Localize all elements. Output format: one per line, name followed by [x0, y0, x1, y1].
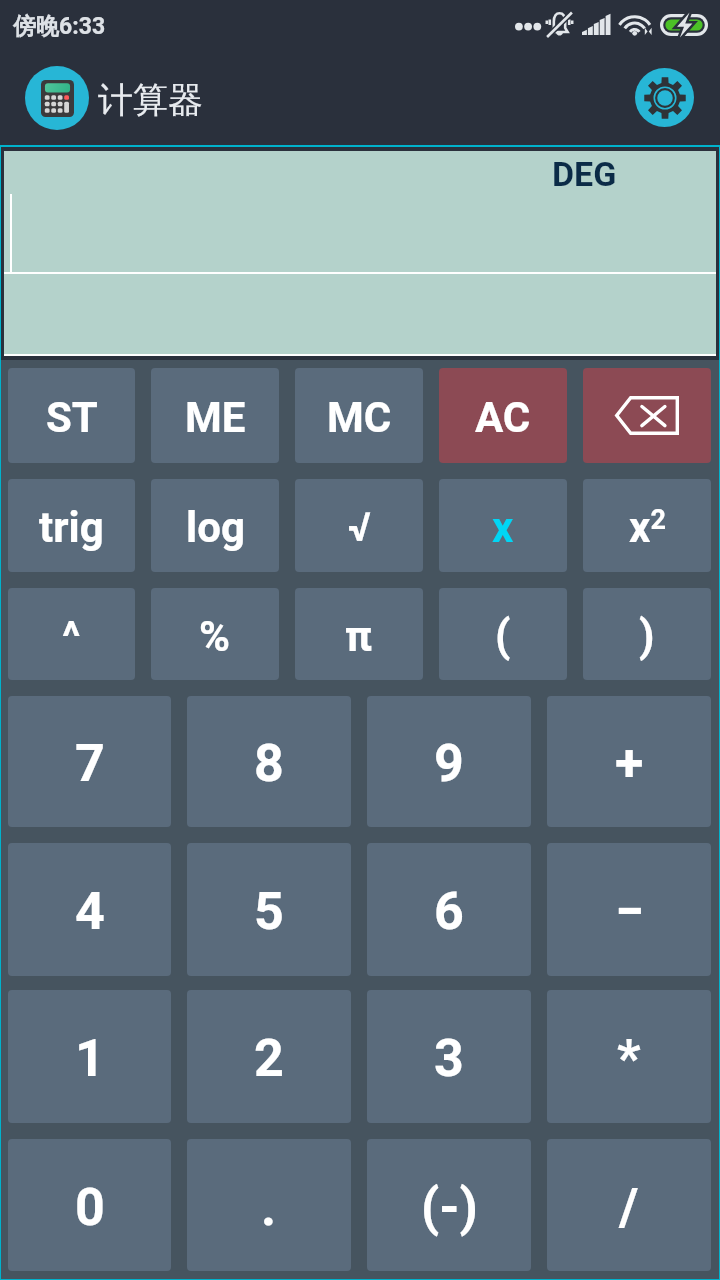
button[interactable]: 9 — [367, 696, 531, 827]
staticText: 6 — [434, 881, 464, 942]
staticText: 傍晚6:33 — [13, 12, 106, 41]
button[interactable]: 6 — [367, 843, 531, 976]
button[interactable]: 8 — [187, 696, 351, 827]
staticText: 0 — [75, 1177, 105, 1238]
staticText: % — [199, 612, 231, 661]
staticText: (-) — [421, 1177, 478, 1238]
button[interactable]: 4 — [8, 843, 171, 976]
button[interactable]: ^ — [8, 588, 135, 680]
staticText: 3 — [434, 1028, 464, 1089]
button[interactable]: Calculator — [25, 66, 89, 130]
staticText: 5 — [254, 881, 284, 942]
button[interactable]: (-) — [367, 1139, 531, 1271]
staticText: DEG — [552, 154, 617, 194]
staticText: ( — [495, 610, 511, 662]
staticText: ) — [639, 610, 655, 662]
staticText: / — [619, 1177, 639, 1238]
staticText: AC — [475, 393, 531, 442]
button[interactable]: ME — [151, 368, 279, 463]
button[interactable]: x2 — [583, 479, 711, 572]
staticText: 8 — [254, 733, 284, 794]
staticText: ME — [185, 393, 246, 442]
button[interactable]: 0 — [8, 1139, 171, 1271]
staticText: x2 — [629, 503, 666, 552]
button[interactable]: 7 — [8, 696, 171, 827]
staticText: 计算器 — [98, 78, 203, 122]
button[interactable]: √ — [295, 479, 423, 572]
button[interactable]: AC — [439, 368, 567, 463]
button[interactable]: . — [187, 1139, 351, 1271]
button[interactable]: − — [547, 843, 711, 976]
button[interactable]: % — [151, 588, 279, 680]
staticText: 1 — [75, 1028, 105, 1089]
button[interactable]: Settings — [635, 68, 694, 127]
button[interactable]: ( — [439, 588, 567, 680]
button[interactable]: ) — [583, 588, 711, 680]
button[interactable]: Backspace — [583, 368, 711, 463]
button[interactable]: + — [547, 696, 711, 827]
button[interactable]: 1 — [8, 990, 171, 1123]
staticText: trig — [39, 503, 104, 552]
staticText: ST — [46, 393, 98, 442]
button[interactable]: 2 — [187, 990, 351, 1123]
button[interactable]: 3 — [367, 990, 531, 1123]
staticText: . — [261, 1177, 277, 1238]
button[interactable]: 5 — [187, 843, 351, 976]
staticText: x — [492, 503, 514, 552]
staticText: 9 — [434, 733, 464, 794]
button[interactable]: * — [547, 990, 711, 1123]
button[interactable]: / — [547, 1139, 711, 1271]
staticText: 4 — [75, 881, 105, 942]
button[interactable]: x — [439, 479, 567, 572]
staticText: π — [345, 612, 373, 661]
staticText: log — [186, 503, 245, 552]
staticText: 2 — [254, 1028, 284, 1089]
staticText: ^ — [62, 612, 81, 661]
staticText: − — [615, 881, 644, 942]
staticText: * — [617, 1028, 641, 1089]
staticText: 7 — [75, 733, 105, 794]
button[interactable]: trig — [8, 479, 135, 572]
staticText: + — [615, 733, 644, 794]
button[interactable]: π — [295, 588, 423, 680]
button[interactable]: MC — [295, 368, 423, 463]
staticText: MC — [327, 393, 392, 442]
button[interactable]: ST — [8, 368, 135, 463]
staticText: √ — [348, 504, 371, 551]
button[interactable]: log — [151, 479, 279, 572]
